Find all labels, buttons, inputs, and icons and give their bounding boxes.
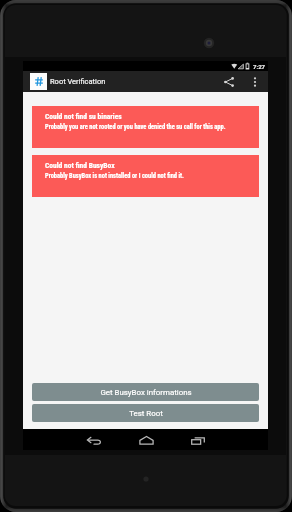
staticText: Root Verification [50,77,106,86]
button[interactable]: Recent apps [172,429,224,450]
button[interactable]: Back [68,429,120,450]
staticText: Probably you are not rooted or you have … [45,123,226,131]
button[interactable]: Home [120,429,172,450]
staticText: Probably BusyBox is not installed or I c… [45,172,184,180]
staticText: Could not find su binaries [45,112,122,121]
button[interactable]: More options [245,71,265,92]
button[interactable]: Share [212,71,245,92]
staticText: Test Root [129,409,163,418]
button[interactable]: Could not find su binaries [32,106,259,148]
staticText: 7:27 [253,63,266,70]
staticText: Get BusyBox informations [100,388,192,397]
button[interactable]: Test Root [32,404,259,422]
button[interactable]: Could not find BusyBox [32,155,259,197]
button[interactable]: Get BusyBox informations [32,383,259,401]
staticText: Could not find BusyBox [45,161,115,170]
